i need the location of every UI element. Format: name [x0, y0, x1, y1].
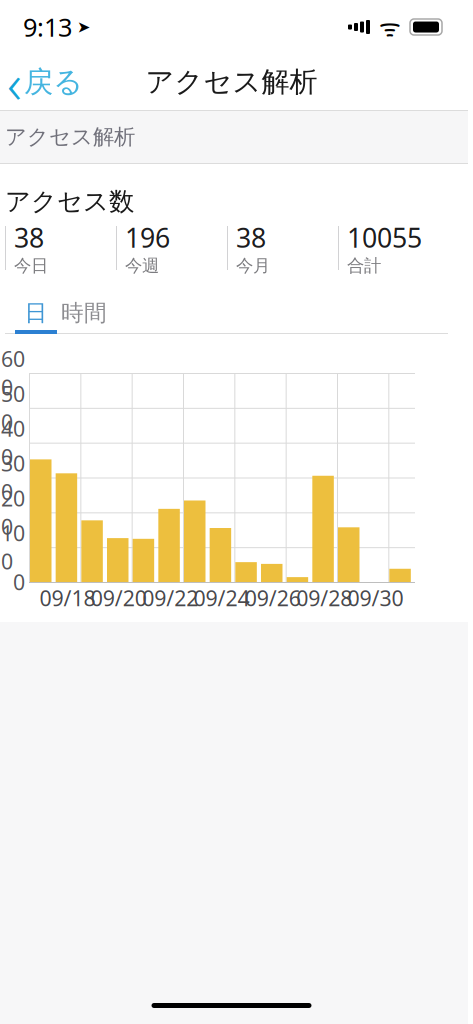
staticText: 196	[125, 220, 170, 255]
staticText: 200	[1, 484, 25, 541]
staticText: 戻る	[24, 64, 83, 100]
button[interactable]: ‹	[0, 54, 93, 110]
staticText: 09/30	[347, 584, 403, 612]
staticText: 500	[1, 379, 25, 436]
staticText: アクセス解析	[145, 65, 317, 99]
staticText: 600	[1, 345, 25, 401]
button[interactable]: 日	[15, 296, 57, 330]
staticText: 09/18	[39, 584, 95, 612]
staticText: アクセス解析	[5, 124, 135, 150]
staticText: 9:13	[23, 10, 72, 44]
staticText: 0	[13, 568, 25, 596]
staticText: ᯤ	[379, 11, 401, 43]
staticText: 09/28	[296, 584, 352, 612]
staticText: 今日	[14, 255, 48, 276]
staticText: 合計	[347, 255, 381, 276]
staticText: ➤	[77, 18, 90, 36]
staticText: 300	[1, 449, 25, 506]
staticText: 09/26	[245, 584, 301, 612]
staticText: ‹	[7, 45, 22, 119]
staticText: 09/20	[91, 584, 147, 612]
staticText: 09/24	[193, 584, 249, 612]
staticText: 時間	[61, 299, 107, 327]
staticText: 今月	[236, 255, 270, 276]
button[interactable]: 時間	[57, 296, 111, 330]
staticText: 今週	[125, 255, 159, 276]
staticText: 日	[24, 299, 47, 327]
staticText: 100	[1, 519, 25, 575]
staticText: 10055	[347, 220, 422, 255]
staticText: 38	[236, 220, 266, 255]
staticText: 09/22	[142, 584, 198, 612]
staticText: 400	[1, 414, 25, 471]
staticText: アクセス数	[5, 186, 134, 217]
staticText: 38	[14, 220, 44, 255]
